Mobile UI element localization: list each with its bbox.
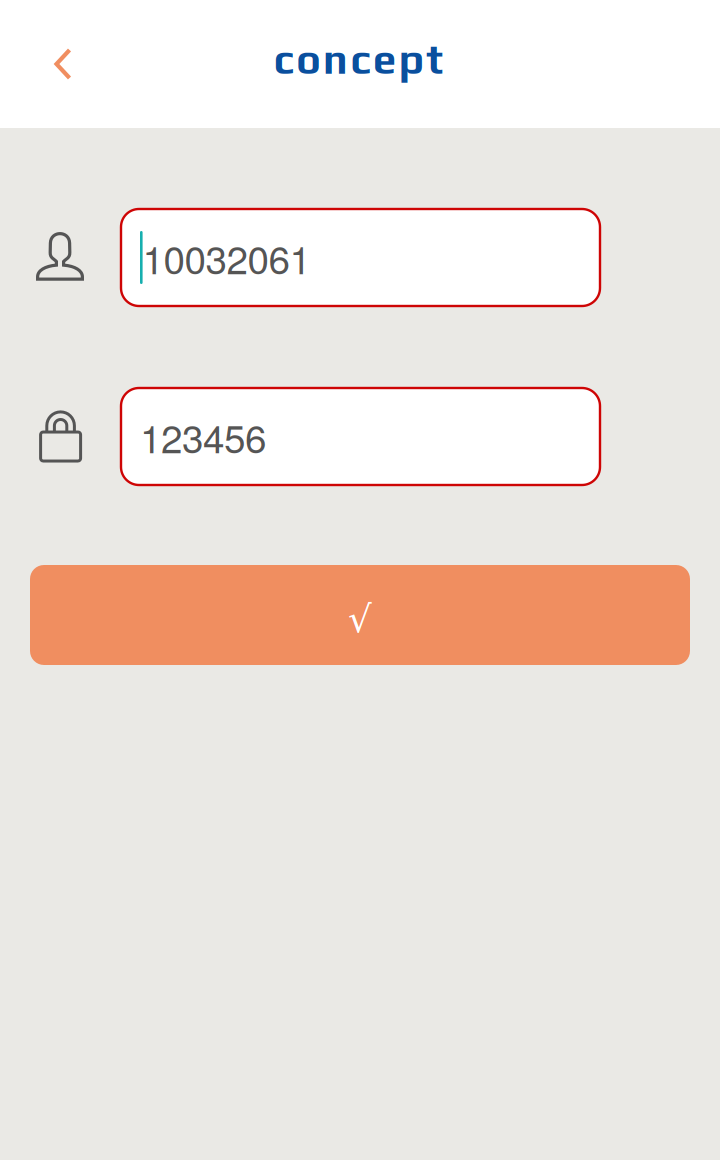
button[interactable]: 10032061 bbox=[121, 209, 600, 306]
staticText: 10032061 bbox=[143, 230, 311, 285]
button[interactable]: Back bbox=[32, 33, 94, 95]
button[interactable]: Sign in bbox=[30, 565, 690, 665]
button[interactable]: 123456 bbox=[121, 388, 600, 485]
staticText: 123456 bbox=[140, 409, 266, 464]
staticText: concept bbox=[274, 35, 443, 83]
staticText: √ bbox=[348, 597, 372, 641]
